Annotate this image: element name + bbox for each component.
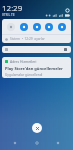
- button[interactable]: Dismiss: [64, 48, 67, 51]
- button[interactable]: Location: [45, 23, 53, 31]
- button[interactable]: Settings: [65, 8, 70, 13]
- button[interactable]: Adres Hizmetleri: [2, 57, 71, 78]
- button[interactable]: Clear all notifications: [32, 123, 42, 133]
- button[interactable]: Flashlight: [58, 23, 66, 31]
- staticText: Sistem • 12:29 ayarlar: [10, 37, 45, 41]
- button[interactable]: Mobile data: [33, 23, 41, 31]
- staticText: 12:29: [2, 2, 23, 13]
- staticText: Play Store'dan güncellemeler: [5, 66, 63, 71]
- button[interactable]: Home: [30, 136, 44, 150]
- button[interactable]: Dismiss: [2, 46, 71, 53]
- staticText: Adres Hizmetleri: [10, 59, 37, 64]
- button[interactable]: Recents: [51, 136, 65, 150]
- button[interactable]: Bluetooth: [20, 23, 28, 31]
- staticText: VTR L TE: [2, 13, 15, 17]
- button[interactable]: Wi-Fi: [7, 23, 15, 31]
- staticText: Uygulamalar güncellendi: [5, 73, 43, 77]
- button[interactable]: Back: [8, 136, 22, 150]
